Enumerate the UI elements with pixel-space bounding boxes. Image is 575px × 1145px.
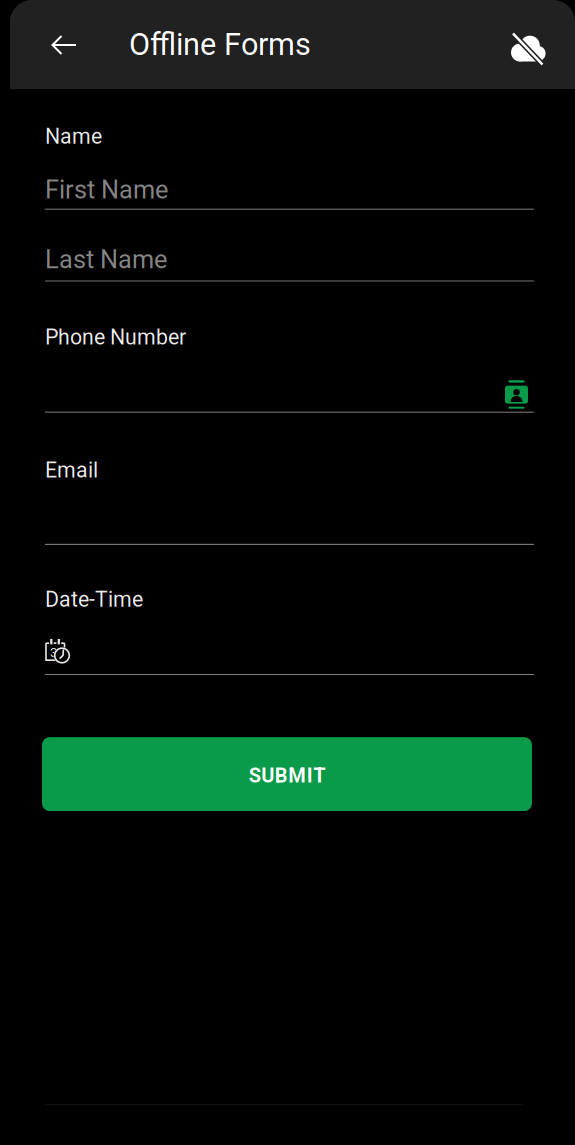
staticText: Phone Number: [45, 325, 186, 350]
staticText: Offline Forms: [129, 26, 311, 62]
staticText: SUBMIT: [249, 764, 325, 787]
staticText: 3: [50, 645, 57, 660]
button[interactable]: Back: [36, 0, 92, 89]
button[interactable]: Choose from contacts: [505, 381, 528, 409]
staticText: Date-Time: [45, 587, 143, 612]
staticText: Last Name: [45, 245, 167, 274]
staticText: Email: [45, 458, 98, 483]
staticText: Name: [45, 124, 102, 149]
staticText: First Name: [45, 175, 168, 205]
button[interactable]: Offline mode: [491, 4, 565, 93]
button[interactable]: SUBMIT: [42, 737, 532, 811]
button[interactable]: Pick date and time: [45, 638, 72, 664]
